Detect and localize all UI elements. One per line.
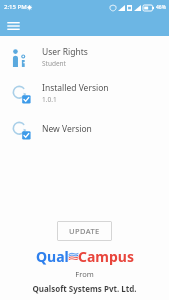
staticText: New Version [42,123,92,135]
staticText: Qualsoft Systems Pvt. Ltd. [32,283,137,294]
staticText: 1.0.1 [42,95,57,104]
staticText: From [75,269,94,279]
staticText: Installed Version [42,82,109,94]
staticText: Qual [36,247,69,266]
button[interactable]: New Version [0,111,169,147]
staticText: UPDATE [69,226,100,236]
staticText: 2:15 PM [4,3,27,11]
button[interactable]: User Rights [0,39,169,75]
staticText: 46% [156,4,166,11]
button[interactable]: Installed Version [0,75,169,111]
button[interactable]: UPDATE [57,221,112,241]
button[interactable]: Open navigation menu [5,17,22,34]
staticText: Campus [78,247,134,266]
staticText: User Rights [42,46,88,58]
staticText: Student [42,59,66,68]
